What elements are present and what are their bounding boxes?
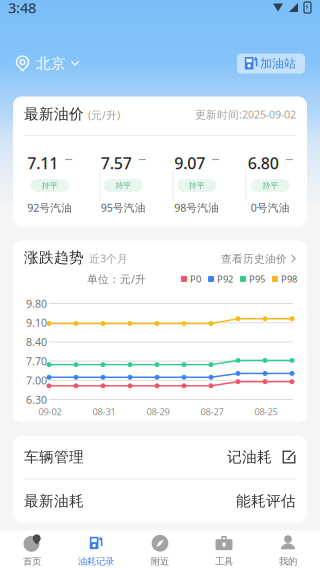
staticText: 8.40 [26, 335, 47, 349]
staticText: (元/升) [88, 108, 120, 122]
button[interactable]: 加油站 [237, 53, 305, 73]
staticText: 加油站 [260, 56, 296, 71]
button[interactable]: 我的 [256, 530, 320, 568]
staticText: P0 [190, 273, 201, 285]
staticText: 最新油耗 [24, 492, 84, 510]
staticText: 工具 [215, 556, 233, 567]
staticText: 查看历史油价 [221, 252, 287, 265]
button[interactable]: 油耗记录 [64, 530, 128, 568]
staticText: 08-25 [254, 405, 277, 418]
staticText: 持平 [189, 181, 205, 190]
staticText: 6.30 [26, 392, 47, 407]
staticText: 能耗评估 [236, 492, 296, 510]
staticText: 更新时间:2025-09-02 [195, 107, 296, 121]
staticText: 08-31 [92, 405, 115, 418]
staticText: 3:48 [8, 0, 36, 17]
staticText: 7.57 [101, 152, 132, 174]
button[interactable]: 附近 [128, 530, 192, 568]
staticText: 7.70 [26, 354, 47, 368]
button[interactable]: 最新油耗 [13, 479, 307, 522]
staticText: 9.10 [26, 316, 47, 330]
staticText: 9.80 [26, 296, 47, 311]
staticText: 92号汽油 [27, 200, 72, 215]
staticText: 首页 [23, 556, 41, 567]
staticText: 持平 [115, 181, 131, 190]
staticText: 涨跌趋势 [24, 248, 84, 266]
button[interactable]: 工具 [192, 530, 256, 568]
staticText: 9.07 [174, 152, 205, 174]
staticText: 车辆管理 [24, 448, 84, 466]
staticText: 我的 [279, 556, 297, 567]
staticText: 附近 [151, 556, 169, 567]
staticText: 单位：元/升 [87, 272, 146, 286]
staticText: 98号汽油 [174, 200, 219, 215]
button[interactable]: 车辆管理 [13, 435, 307, 478]
staticText: 近3个月 [89, 251, 128, 265]
staticText: 7.11 [27, 152, 58, 174]
staticText: 7.00 [26, 373, 47, 387]
staticText: 北京 [36, 54, 66, 72]
button[interactable]: 查看历史油价 [221, 253, 296, 266]
staticText: 持平 [42, 181, 58, 190]
button[interactable]: 首页 [0, 530, 64, 568]
staticText: 记油耗 [227, 448, 272, 466]
staticText: 95号汽油 [101, 200, 146, 215]
staticText: P98 [281, 273, 297, 285]
staticText: P92 [217, 273, 233, 285]
staticText: 09-02 [38, 405, 61, 418]
staticText: 持平 [262, 181, 278, 190]
staticText: 最新油价 [24, 105, 84, 123]
staticText: P95 [249, 273, 265, 285]
staticText: 0号汽油 [251, 200, 290, 215]
staticText: 油耗记录 [78, 556, 114, 567]
button[interactable]: 北京 [15, 54, 79, 72]
staticText: 08-29 [146, 405, 169, 418]
staticText: 08-27 [200, 405, 223, 418]
staticText: 6.80 [248, 152, 279, 174]
